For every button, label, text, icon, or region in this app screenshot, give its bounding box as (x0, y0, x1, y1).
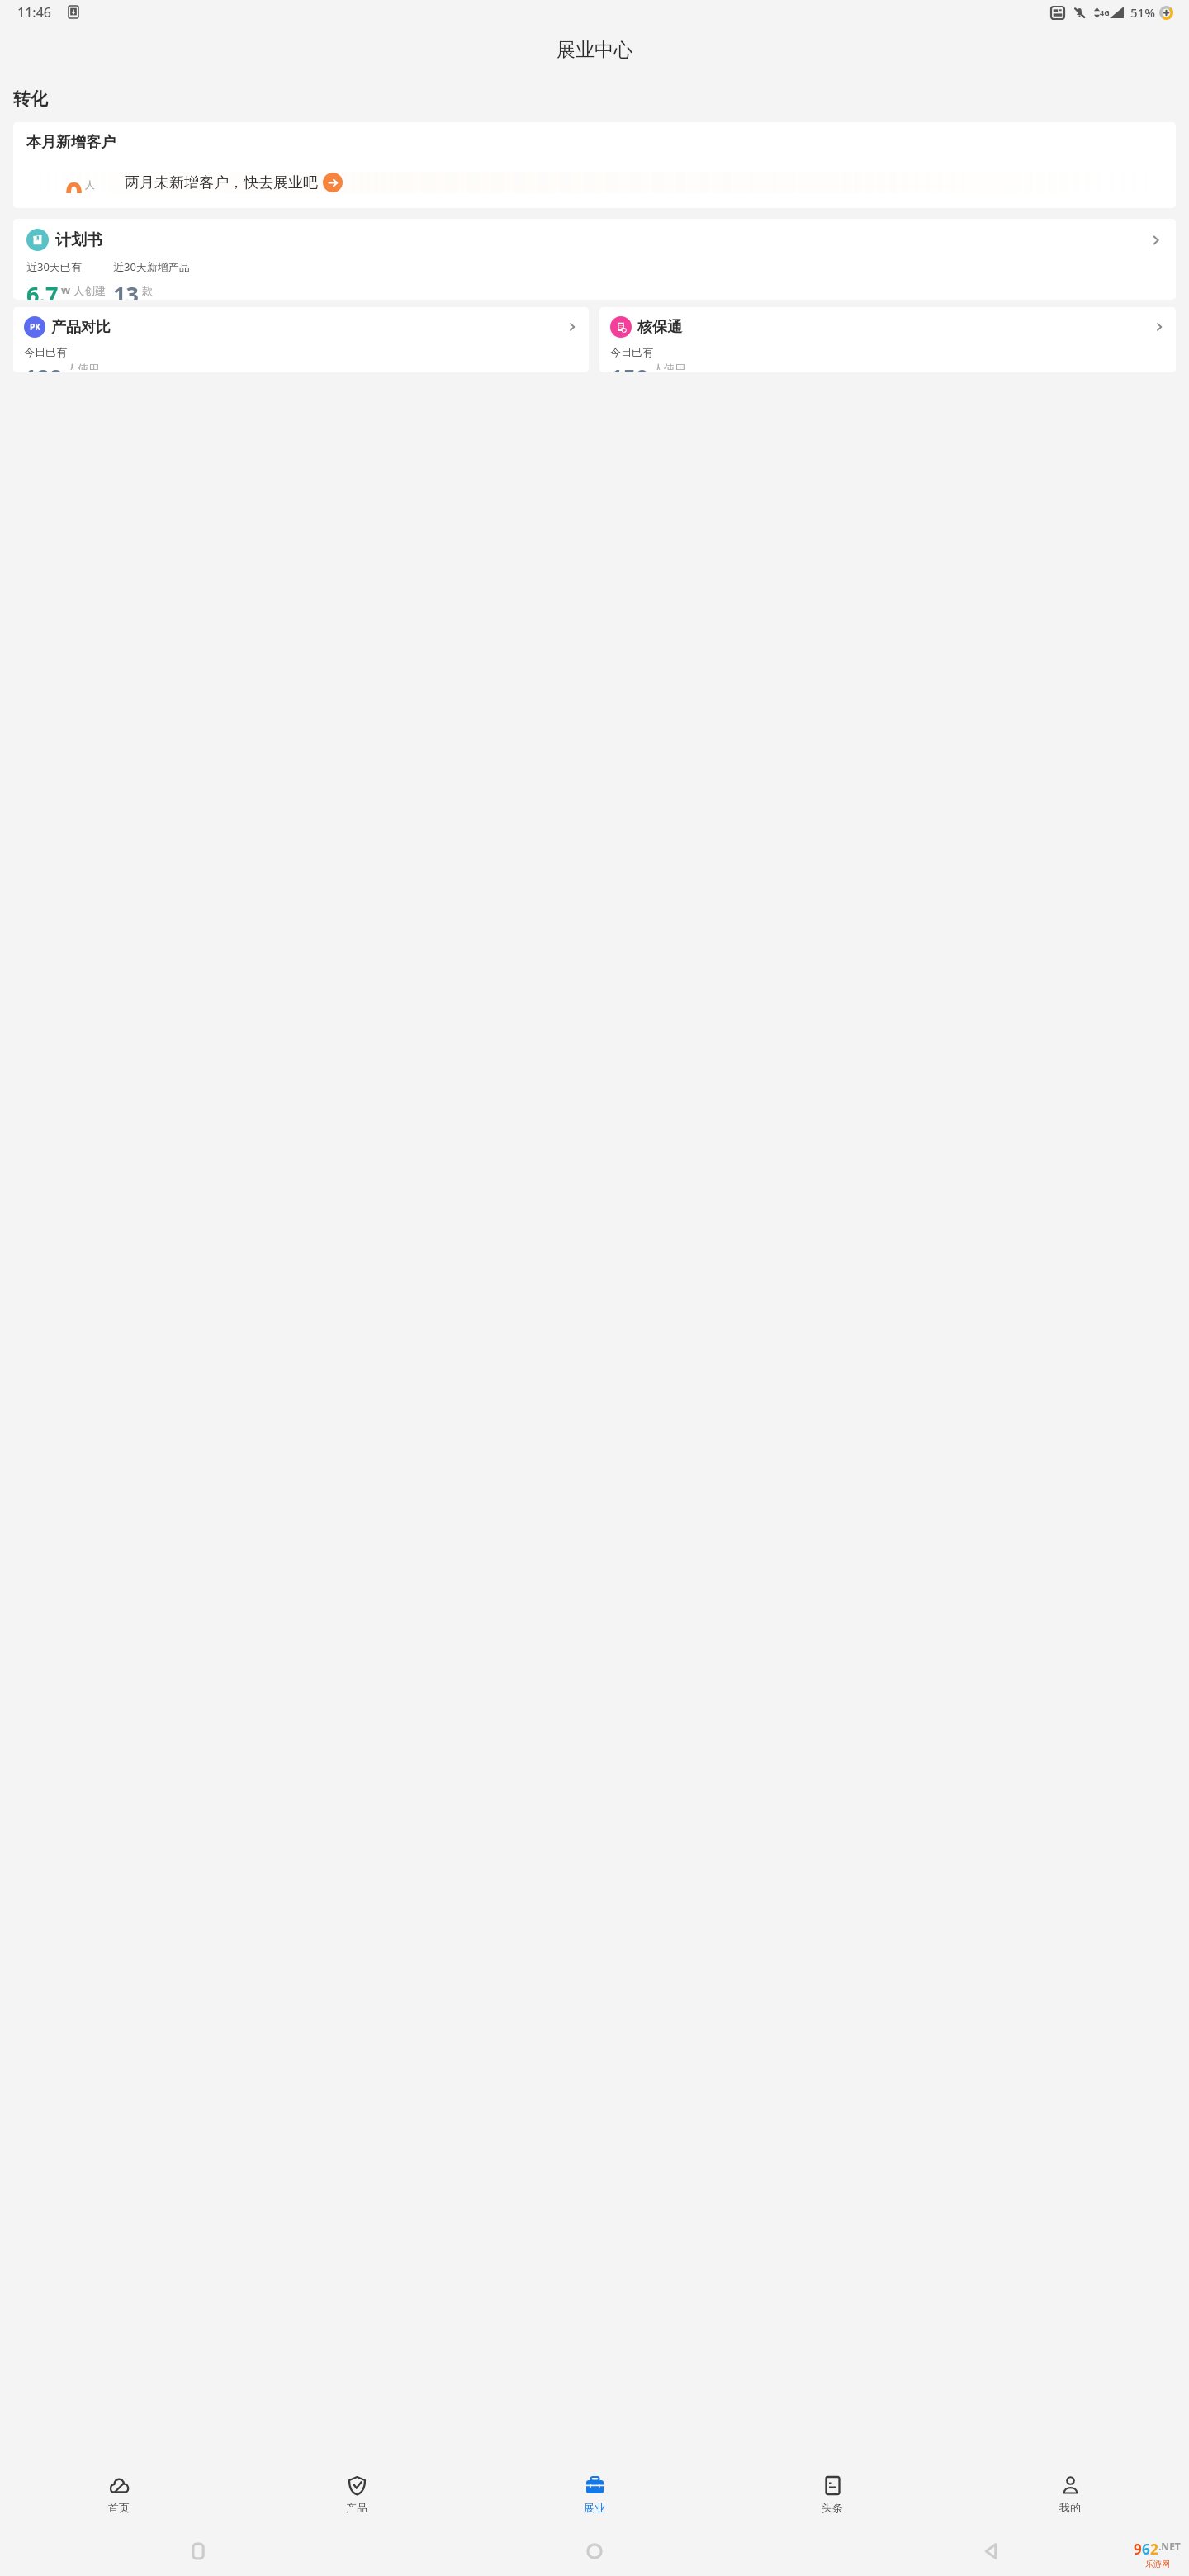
button[interactable]: 我的 (951, 2462, 1189, 2526)
staticText: 2 (1150, 2540, 1158, 2559)
button[interactable]: 本月新增客户 (13, 122, 1176, 208)
staticText: 两月未新增客户，快去展业吧 (125, 173, 318, 192)
staticText: 款 (142, 284, 153, 297)
staticText: 9 (1134, 2540, 1142, 2559)
staticText: .NET (1158, 2540, 1181, 2553)
button[interactable]: 去展业 (323, 173, 343, 192)
staticText: 乐游网 (1145, 2559, 1170, 2569)
button[interactable]: 计划书 (13, 219, 1176, 300)
staticText: 11:46 (17, 3, 51, 21)
staticText: 51% (1130, 4, 1155, 21)
button[interactable]: Back (982, 2542, 1000, 2560)
staticText: 产品 (346, 2501, 367, 2514)
staticText: 转化 (13, 88, 48, 110)
staticText: 6.7 (26, 279, 59, 300)
staticText: 展业 (584, 2501, 605, 2514)
staticText: 产品对比 (51, 318, 111, 337)
staticText: 核保通 (637, 318, 682, 337)
staticText: 人 (85, 178, 95, 191)
staticText: 头条 (822, 2501, 843, 2514)
button[interactable]: Recents (189, 2542, 207, 2560)
staticText: 今日已有 (24, 345, 67, 358)
button[interactable]: 核保通 (599, 307, 1176, 372)
button[interactable]: 产品 (238, 2462, 476, 2526)
staticText: 计划书 (55, 230, 102, 250)
staticText: 13 (113, 279, 139, 300)
staticText: 4G (1100, 7, 1110, 17)
staticText: 今日已有 (610, 345, 653, 358)
staticText: 我的 (1059, 2501, 1081, 2514)
button[interactable]: 展业 (476, 2462, 713, 2526)
staticText: 人使用 (653, 362, 685, 370)
staticText: 展业中心 (557, 38, 632, 62)
staticText: w (61, 282, 71, 297)
button[interactable]: 头条 (713, 2462, 951, 2526)
button[interactable]: 首页 (0, 2462, 238, 2526)
staticText: 128 (24, 362, 63, 372)
staticText: PK (30, 321, 40, 333)
staticText: 近30天新增产品 (113, 259, 190, 274)
staticText: 人使用 (67, 362, 99, 370)
staticText: 150 (610, 362, 649, 372)
staticText: 首页 (108, 2501, 130, 2514)
staticText: 6 (1142, 2540, 1150, 2559)
staticText: 0 (65, 172, 83, 193)
staticText: 人创建 (73, 284, 106, 297)
button[interactable]: Home (585, 2542, 604, 2560)
staticText: 近30天已有 (26, 259, 82, 274)
staticText: 本月新增客户 (26, 133, 116, 152)
button[interactable]: PK (13, 307, 589, 372)
